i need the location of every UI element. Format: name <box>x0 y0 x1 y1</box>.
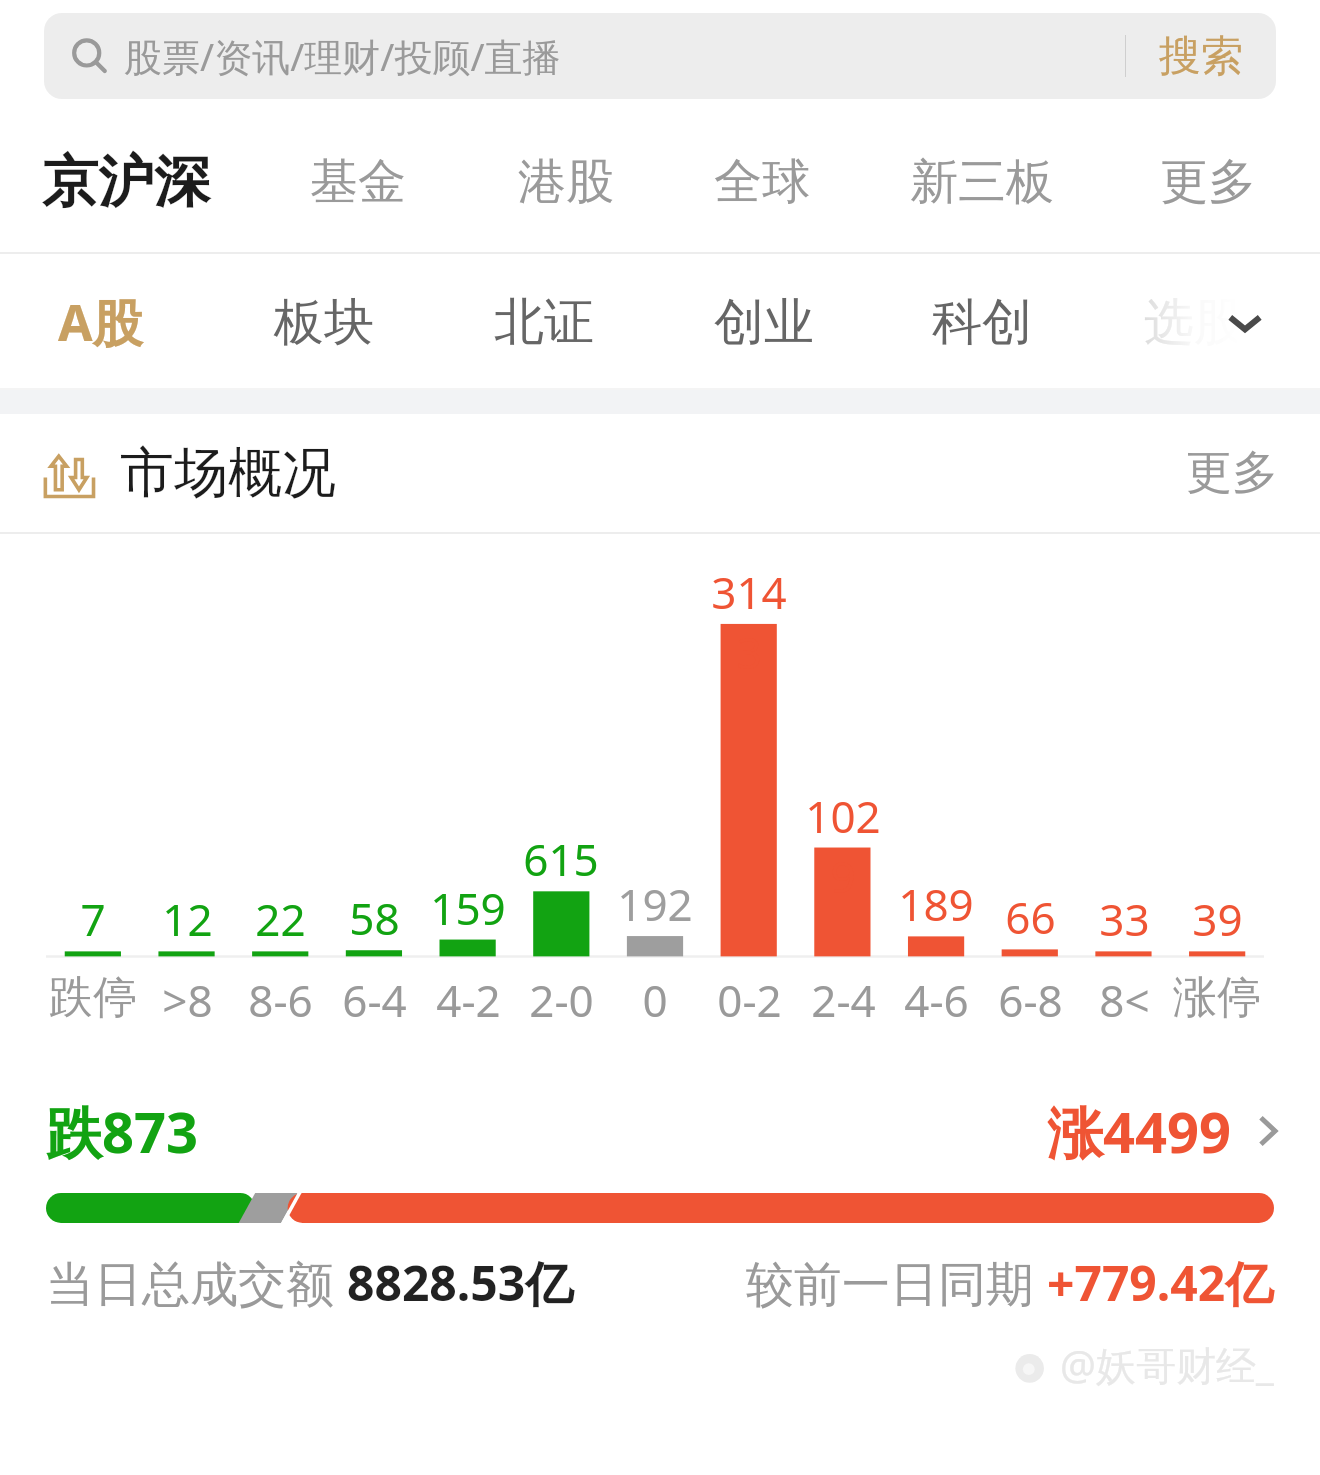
staticText: 市场概况 <box>120 439 336 507</box>
staticText: 京沪深 <box>42 147 210 218</box>
staticText: 涨4499 <box>1047 1093 1232 1169</box>
button[interactable]: 市场概况 <box>0 414 1320 532</box>
staticText: 8828.53亿 <box>347 1250 574 1316</box>
staticText: 基金 <box>310 152 406 212</box>
staticText: 58 <box>349 888 400 948</box>
button[interactable]: A股 <box>58 254 143 390</box>
staticText: 北证 <box>494 291 594 354</box>
staticText: +779.42亿 <box>1047 1250 1274 1316</box>
staticText: @妖哥财经_ <box>1060 1337 1274 1392</box>
button[interactable]: 新三板 <box>910 112 1054 252</box>
staticText: 12 <box>162 889 213 949</box>
button[interactable]: 搜索 <box>1126 13 1276 99</box>
staticText: >8 <box>162 970 213 1030</box>
staticText: 6-8 <box>998 970 1063 1030</box>
staticText: 选股 <box>1144 291 1244 354</box>
staticText: 8< <box>1099 970 1150 1030</box>
staticText: 1029 <box>796 786 890 906</box>
staticText: 较前一日同期 <box>746 1250 1047 1316</box>
staticText: 港股 <box>518 152 614 212</box>
staticText: 科创 <box>932 291 1032 354</box>
staticText: 全球 <box>714 152 810 212</box>
staticText: 跌停 <box>49 970 137 1025</box>
button[interactable]: 股票/资讯/理财/投顾/直播 <box>44 13 1276 99</box>
button[interactable]: 全球 <box>714 112 810 252</box>
staticText: 7 <box>80 889 106 949</box>
button[interactable]: 创业 <box>714 254 814 390</box>
button[interactable]: 更多 <box>1160 112 1256 252</box>
button[interactable]: 北证 <box>494 254 594 390</box>
staticText: 3143 <box>702 562 796 682</box>
staticText: 0-2 <box>717 970 782 1030</box>
staticText: 6-4 <box>342 970 407 1030</box>
staticText: 涨停 <box>1173 970 1261 1025</box>
staticText: 当日总成交额 <box>46 1250 347 1316</box>
staticText: 跌873 <box>46 1093 199 1169</box>
staticText: 615 <box>523 829 599 889</box>
staticText: 创业 <box>714 291 814 354</box>
staticText: 159 <box>430 878 506 938</box>
staticText: 0 <box>642 970 668 1030</box>
staticText: A股 <box>58 288 143 356</box>
staticText: 33 <box>1099 889 1150 949</box>
button[interactable]: 跌873 <box>0 1079 1320 1183</box>
staticText: 新三板 <box>910 152 1054 212</box>
staticText: 39 <box>1192 889 1243 949</box>
staticText: 4-6 <box>904 970 969 1030</box>
staticText: 4-2 <box>436 970 501 1030</box>
staticText: 股票/资讯/理财/投顾/直播 <box>124 30 561 82</box>
staticText: 189 <box>898 874 974 934</box>
staticText: 更多 <box>1160 152 1256 212</box>
staticText: 192 <box>617 874 693 934</box>
button[interactable]: 基金 <box>310 112 406 252</box>
button[interactable]: 选股 <box>1144 254 1290 390</box>
button[interactable]: 科创 <box>932 254 1032 390</box>
staticText: 22 <box>255 889 306 949</box>
button[interactable]: 京沪深 <box>42 112 210 252</box>
staticText: 8-6 <box>248 970 313 1030</box>
staticText: 搜索 <box>1159 30 1243 83</box>
button[interactable]: 港股 <box>518 112 614 252</box>
staticText: 66 <box>1005 887 1056 947</box>
other: 展开 <box>1222 299 1268 345</box>
other: 查看详情 <box>1246 1109 1290 1153</box>
staticText: 2-0 <box>529 970 594 1030</box>
staticText: 板块 <box>274 291 374 354</box>
button[interactable]: 板块 <box>274 254 374 390</box>
staticText: 2-4 <box>811 970 876 1030</box>
staticText: 更多 <box>1186 444 1278 502</box>
